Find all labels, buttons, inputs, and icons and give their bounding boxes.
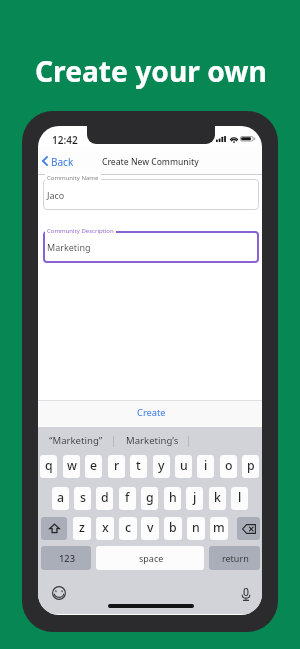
button[interactable] (41, 546, 91, 570)
button[interactable]: a (52, 487, 69, 510)
staticText: t (136, 457, 141, 474)
staticText: k (214, 489, 221, 506)
staticText: u (180, 457, 188, 474)
button[interactable] (113, 427, 188, 453)
button[interactable]: t (130, 455, 147, 478)
button[interactable]: c (119, 517, 137, 540)
button[interactable] (38, 427, 113, 453)
staticText: l (238, 489, 242, 506)
button[interactable]: i (197, 455, 214, 478)
staticText: o (225, 457, 233, 474)
staticText: Marketing’s (126, 434, 179, 447)
staticText: Community Name (47, 174, 99, 182)
staticText: return (222, 552, 249, 564)
button[interactable]: y (153, 455, 170, 478)
button[interactable]: Backspace (237, 517, 260, 540)
button[interactable]: w (63, 455, 80, 478)
staticText: q (45, 457, 53, 474)
staticText: a (57, 489, 65, 506)
button[interactable]: h (164, 487, 181, 510)
button[interactable]: s (74, 487, 91, 510)
staticText: z (79, 519, 85, 536)
staticText: f (125, 489, 130, 506)
button[interactable]: z (73, 517, 91, 540)
button[interactable]: p (242, 455, 259, 478)
button[interactable] (96, 546, 204, 570)
button[interactable] (43, 179, 259, 210)
button[interactable]: v (141, 517, 159, 540)
staticText: c (125, 519, 132, 536)
staticText: y (158, 457, 165, 474)
staticText: g (146, 489, 154, 506)
button[interactable] (43, 231, 259, 263)
button[interactable]: j (186, 487, 203, 510)
button[interactable] (41, 152, 76, 169)
staticText: e (90, 457, 98, 474)
staticText: Create New Community (102, 156, 199, 168)
staticText: 12:42 (52, 133, 78, 147)
staticText: “Marketing” (49, 434, 103, 447)
button[interactable]: e (85, 455, 102, 478)
staticText: x (102, 519, 109, 536)
staticText: d (101, 489, 109, 506)
button[interactable]: Emoji keyboard (50, 584, 68, 602)
button[interactable]: Dictation (237, 585, 255, 603)
button[interactable]: m (210, 517, 228, 540)
staticText: i (204, 457, 208, 474)
button[interactable]: b (164, 517, 182, 540)
button[interactable]: o (220, 455, 237, 478)
staticText: m (213, 519, 225, 536)
button[interactable] (209, 546, 260, 570)
staticText: j (193, 489, 197, 506)
staticText: n (192, 519, 200, 536)
staticText: 123 (59, 552, 75, 565)
staticText: b (169, 519, 177, 536)
staticText: w (67, 457, 77, 474)
staticText: Community Description (47, 227, 114, 235)
button[interactable]: k (209, 487, 226, 510)
button[interactable]: u (175, 455, 192, 478)
button[interactable]: l (231, 487, 248, 510)
staticText: Jaco (47, 189, 65, 201)
staticText: s (80, 489, 86, 506)
button[interactable]: g (141, 487, 158, 510)
button[interactable]: n (187, 517, 205, 540)
staticText: space (139, 552, 164, 564)
staticText: h (169, 489, 177, 506)
button[interactable]: f (119, 487, 136, 510)
staticText: r (114, 457, 120, 474)
staticText: v (147, 519, 154, 536)
button[interactable] (38, 400, 262, 427)
button[interactable]: x (96, 517, 114, 540)
staticText: Create your own (35, 52, 267, 90)
staticText: Marketing (47, 241, 91, 253)
staticText: p (247, 457, 255, 474)
staticText: Create (137, 406, 166, 419)
button[interactable]: Shift (41, 517, 67, 540)
button[interactable]: d (96, 487, 113, 510)
staticText: Back (51, 155, 74, 169)
button[interactable]: r (108, 455, 125, 478)
button[interactable]: q (40, 455, 57, 478)
